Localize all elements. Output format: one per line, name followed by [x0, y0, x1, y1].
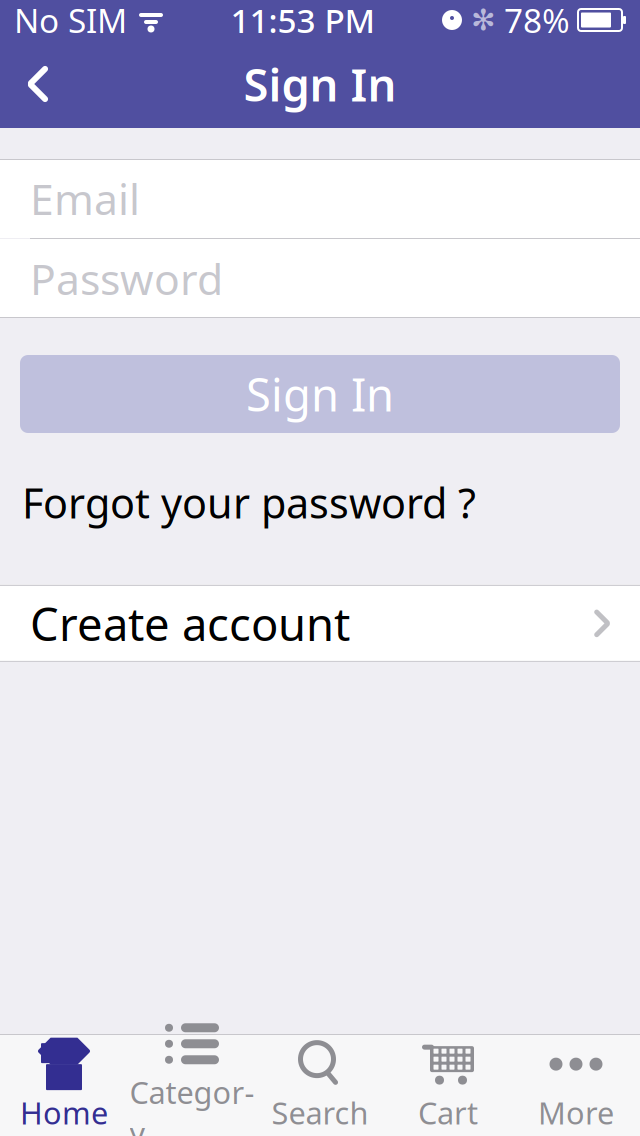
button[interactable]: Back: [8, 54, 68, 114]
button[interactable]: Sign In: [20, 355, 620, 433]
staticText: Password: [30, 250, 223, 307]
staticText: No SIM: [14, 0, 127, 42]
button[interactable]: Category: [128, 1035, 256, 1135]
button[interactable]: Home: [0, 1035, 128, 1135]
button[interactable]: Search: [256, 1035, 384, 1135]
staticText: More: [538, 1092, 614, 1133]
staticText: Cart: [418, 1092, 478, 1133]
button[interactable]: Cart: [384, 1035, 512, 1135]
staticText: Create account: [30, 593, 350, 653]
staticText: Email: [30, 170, 140, 227]
staticText: Sign In: [243, 54, 396, 114]
staticText: Forgot your password ?: [22, 475, 476, 530]
button[interactable]: More: [512, 1035, 640, 1135]
staticText: ✻: [471, 3, 496, 37]
button[interactable]: Create account: [0, 585, 640, 662]
staticText: 11:53 PM: [230, 0, 375, 42]
staticText: Home: [20, 1092, 108, 1133]
staticText: Category: [129, 1072, 254, 1136]
button[interactable]: Forgot your password ?: [22, 465, 476, 540]
staticText: Search: [271, 1092, 368, 1133]
staticText: Sign In: [246, 364, 394, 424]
staticText: 78%: [504, 0, 570, 42]
